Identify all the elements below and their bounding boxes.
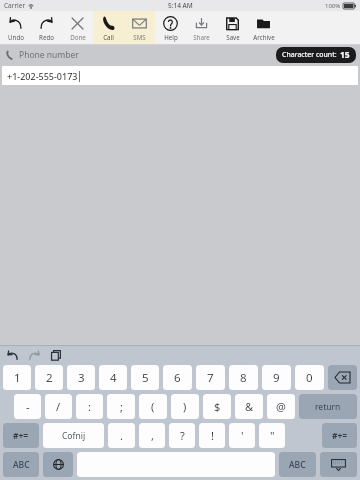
staticText: 8: [240, 370, 247, 386]
button[interactable]: .: [108, 423, 135, 448]
button[interactable]: Share: [186, 11, 217, 45]
staticText: 5:14 AM: [168, 1, 193, 10]
button[interactable]: Redo: [28, 349, 41, 362]
button[interactable]: Cofnij: [43, 423, 104, 448]
staticText: 100%: [325, 2, 341, 10]
staticText: :: [88, 399, 91, 414]
button[interactable]: Help: [155, 11, 186, 45]
button[interactable]: Call: [93, 11, 124, 45]
button[interactable]: Backspace: [328, 365, 357, 390]
button[interactable]: Archive: [248, 11, 279, 45]
staticText: $: [214, 399, 221, 414]
staticText: .: [120, 428, 123, 443]
button[interactable]: (: [139, 394, 167, 419]
button[interactable]: Paste: [50, 349, 63, 362]
button[interactable]: Character count:: [276, 47, 356, 63]
staticText: ABC: [289, 459, 306, 471]
button[interactable]: &: [235, 394, 263, 419]
button[interactable]: ': [229, 423, 255, 448]
button[interactable]: +1-202-555-0173: [2, 66, 358, 85]
button[interactable]: 5: [131, 365, 159, 390]
button[interactable]: Redo: [31, 11, 62, 45]
button[interactable]: 4: [99, 365, 127, 390]
button[interactable]: ?: [169, 423, 195, 448]
button[interactable]: /: [45, 394, 72, 419]
button[interactable]: 8: [229, 365, 258, 390]
button[interactable]: :: [76, 394, 103, 419]
staticText: 2: [46, 370, 53, 386]
staticText: 6: [174, 370, 181, 386]
staticText: ): [183, 399, 187, 414]
button[interactable]: 1: [3, 365, 31, 390]
button[interactable]: !: [199, 423, 225, 448]
button[interactable]: ABC: [3, 452, 39, 477]
staticText: ?: [180, 428, 185, 443]
staticText: Character count:: [282, 50, 337, 60]
staticText: Archive: [253, 33, 275, 41]
button[interactable]: 9: [262, 365, 291, 390]
staticText: ,: [151, 428, 154, 443]
staticText: #+=: [13, 430, 29, 442]
staticText: !: [211, 428, 214, 443]
button[interactable]: 2: [35, 365, 63, 390]
staticText: &: [245, 399, 254, 414]
staticText: Share: [193, 33, 210, 41]
button[interactable]: Hide keyboard: [320, 452, 357, 477]
button[interactable]: Undo: [6, 349, 19, 362]
button[interactable]: Done: [62, 11, 93, 45]
button[interactable]: 7: [196, 365, 225, 390]
staticText: 0: [306, 370, 313, 386]
staticText: (: [151, 399, 155, 414]
button[interactable]: 0: [295, 365, 324, 390]
staticText: Undo: [8, 33, 24, 41]
staticText: Redo: [39, 33, 54, 41]
staticText: Done: [70, 33, 86, 41]
staticText: 3: [78, 370, 85, 386]
staticText: 7: [207, 370, 214, 386]
staticText: Help: [164, 33, 178, 41]
staticText: @: [276, 399, 286, 414]
button[interactable]: $: [203, 394, 231, 419]
staticText: return: [315, 401, 341, 413]
staticText: SMS: [133, 33, 146, 41]
button[interactable]: @: [267, 394, 295, 419]
button[interactable]: SMS: [124, 11, 155, 45]
staticText: ': [241, 428, 244, 443]
staticText: 9: [273, 370, 280, 386]
button[interactable]: ,: [139, 423, 165, 448]
staticText: -: [26, 399, 30, 414]
staticText: Save: [226, 33, 240, 41]
staticText: Call: [103, 33, 114, 41]
staticText: +1-202-555-0173: [7, 70, 78, 82]
button[interactable]: 6: [163, 365, 192, 390]
staticText: Carrier: [4, 1, 26, 10]
staticText: 1: [14, 370, 21, 386]
button[interactable]: ABC: [279, 452, 316, 477]
button[interactable]: Save: [217, 11, 248, 45]
button[interactable]: ): [171, 394, 199, 419]
staticText: /: [56, 399, 61, 414]
staticText: 5: [142, 370, 149, 386]
staticText: ABC: [13, 459, 30, 471]
button[interactable]: -: [14, 394, 41, 419]
staticText: Phone number: [19, 49, 79, 61]
button[interactable]: 3: [67, 365, 95, 390]
button[interactable]: #+=: [3, 423, 39, 448]
staticText: Cofnij: [62, 430, 86, 442]
staticText: ;: [120, 399, 123, 414]
staticText: 15: [340, 49, 350, 61]
button[interactable]: return: [299, 394, 357, 419]
button[interactable]: ;: [107, 394, 135, 419]
staticText: ": [270, 428, 275, 443]
button[interactable]: Switch keyboard language: [43, 452, 73, 477]
button[interactable]: Undo: [0, 11, 31, 45]
staticText: #+=: [332, 430, 348, 442]
staticText: 4: [110, 370, 117, 386]
button[interactable]: ": [259, 423, 285, 448]
button[interactable]: #+=: [322, 423, 357, 448]
